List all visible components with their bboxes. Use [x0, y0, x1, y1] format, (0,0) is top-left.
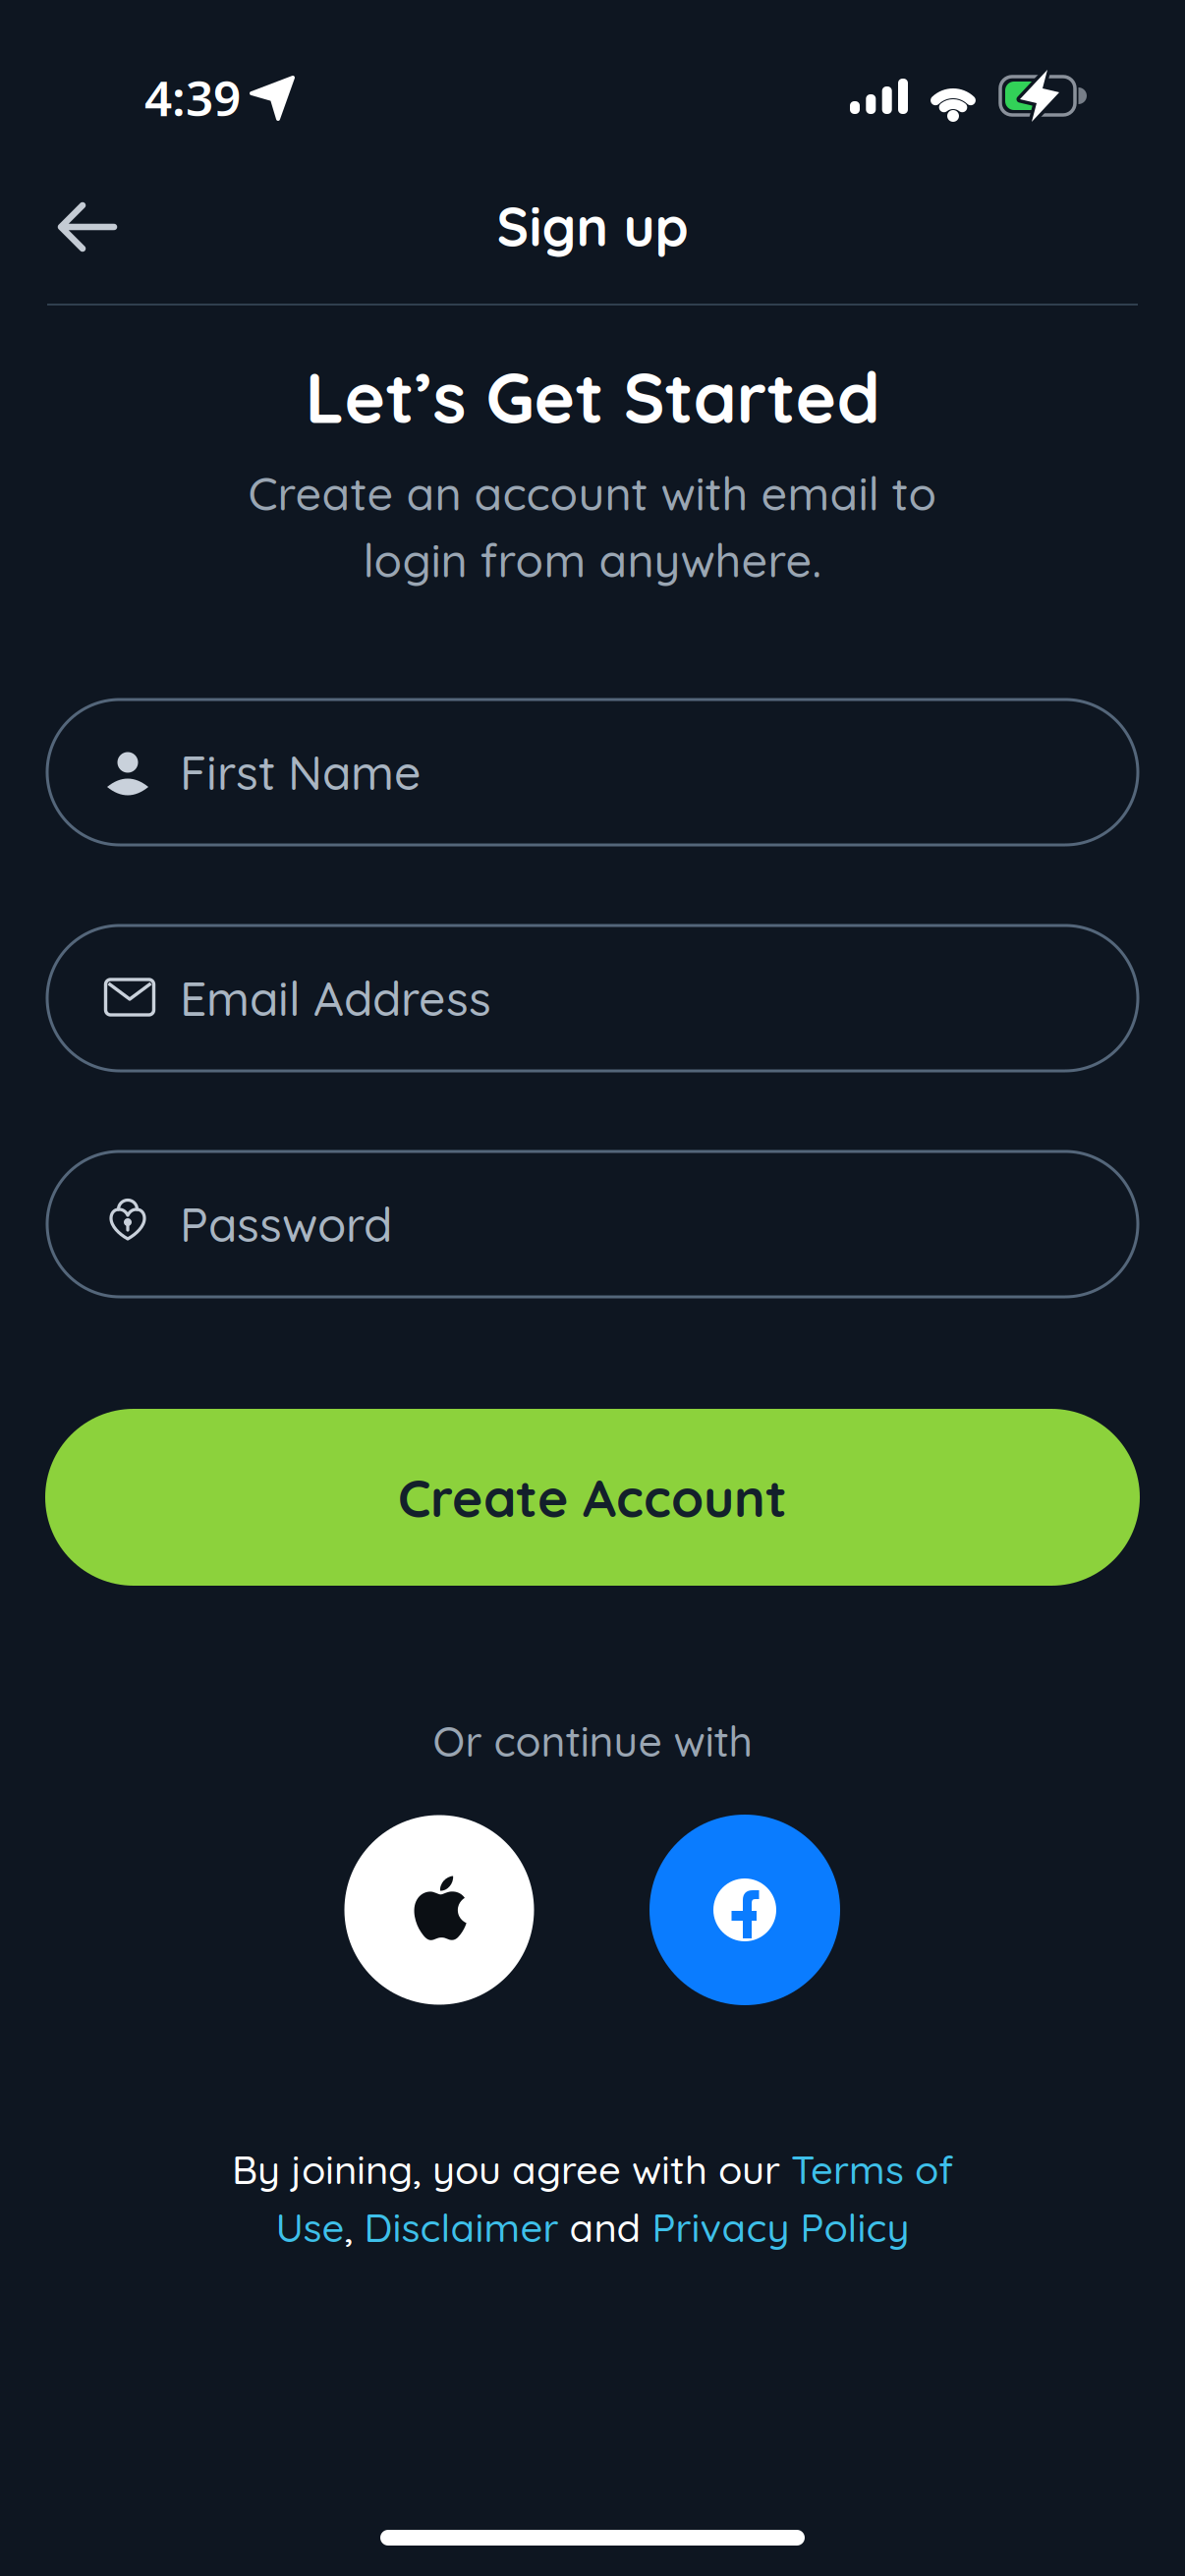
staticText: ,: [344, 2203, 364, 2252]
staticText: login from anywhere.: [363, 531, 822, 589]
button[interactable]: [47, 700, 1138, 845]
staticText: By joining, you agree with our: [232, 2145, 791, 2194]
staticText: Sign up: [497, 192, 688, 259]
button[interactable]: Privacy Policy: [652, 2203, 909, 2252]
staticText: and: [559, 2203, 652, 2252]
button[interactable]: [47, 1151, 1138, 1297]
button[interactable]: Terms of: [791, 2145, 953, 2194]
button[interactable]: Create Account: [45, 1409, 1140, 1586]
staticText: Email Address: [180, 969, 491, 1028]
button[interactable]: Continue with Facebook: [649, 1815, 840, 2005]
staticText: Or continue with: [433, 1715, 752, 1767]
staticText: First Name: [180, 743, 422, 802]
staticText: Use: [276, 2203, 344, 2252]
staticText: Terms of: [791, 2145, 953, 2194]
staticText: Password: [180, 1195, 392, 1254]
button[interactable]: Back: [45, 183, 134, 271]
staticText: Privacy Policy: [652, 2203, 909, 2252]
staticText: Create Account: [398, 1465, 787, 1530]
button[interactable]: [47, 925, 1138, 1071]
button[interactable]: Use: [276, 2203, 344, 2252]
staticText: Disclaimer: [364, 2203, 559, 2252]
staticText: 4:39: [144, 65, 241, 129]
staticText: Let’s Get Started: [305, 353, 880, 440]
staticText: Create an account with email to: [248, 465, 937, 522]
button[interactable]: Continue with Apple: [344, 1815, 534, 2005]
button[interactable]: Disclaimer: [364, 2203, 559, 2252]
